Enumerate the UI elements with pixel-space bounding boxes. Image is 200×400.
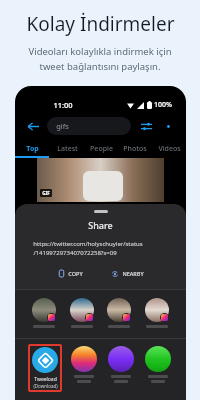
staticText: Videoları kolaylıkla indirmek için (28, 45, 172, 58)
button[interactable] (143, 296, 171, 330)
staticText: Share (88, 219, 113, 231)
button[interactable]: COPY (53, 267, 88, 280)
staticText: https://twitter.com/holyschuyler/status (33, 240, 143, 248)
staticText: COPY (68, 270, 83, 277)
staticText: 11:00 (53, 100, 73, 110)
staticText: Videos (158, 144, 181, 154)
button[interactable] (106, 344, 136, 385)
staticText: 100% (154, 100, 172, 110)
staticText: (Download) (33, 383, 58, 389)
staticText: Latest (57, 144, 78, 154)
staticText: gifs (56, 121, 69, 131)
button[interactable]: People (84, 141, 118, 156)
button[interactable]: NEARBY (106, 267, 149, 280)
staticText: Top (26, 144, 39, 154)
staticText: GIF (42, 190, 50, 196)
button[interactable]: Videos (152, 141, 186, 156)
button[interactable]: Tweeload (28, 344, 62, 392)
staticText: tweet bağlantısını paylaşın. (39, 60, 161, 73)
button[interactable] (68, 296, 96, 330)
staticText: /1419972973407072258?s=09 (33, 249, 117, 257)
button[interactable] (69, 344, 99, 385)
staticText: Tweeload (34, 376, 57, 383)
staticText: People (90, 144, 113, 154)
button[interactable]: Top (15, 141, 50, 156)
button[interactable] (105, 296, 133, 330)
button[interactable]: Photos (118, 141, 152, 156)
button[interactable]: Back (23, 116, 43, 136)
staticText: Kolay İndirmeler (26, 11, 175, 37)
staticText: NEARBY (122, 270, 144, 277)
button[interactable] (30, 296, 58, 330)
button[interactable] (143, 344, 173, 385)
button[interactable]: gifs (47, 117, 131, 135)
button[interactable]: Latest (50, 141, 84, 156)
staticText: Photos (123, 144, 147, 154)
button[interactable]: Search filters (137, 117, 155, 135)
button[interactable]: More options (160, 118, 176, 134)
